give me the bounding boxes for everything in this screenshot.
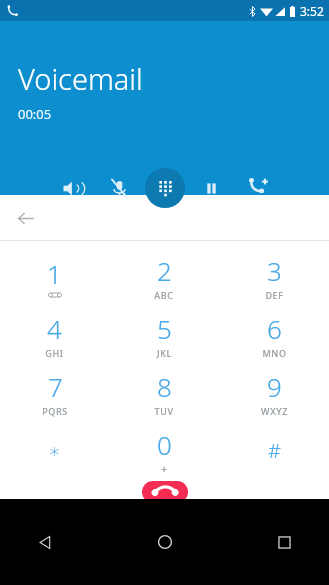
staticText: 3:52 — [300, 3, 324, 19]
button[interactable]: Key 0 — [109, 425, 219, 477]
button[interactable]: Key 7 — [0, 367, 109, 419]
staticText: 1 — [47, 256, 62, 291]
button[interactable]: Key 4 — [0, 309, 109, 361]
staticText: 00:05 — [18, 105, 52, 123]
button[interactable]: Recent apps — [261, 519, 307, 565]
staticText: TUV — [154, 405, 174, 417]
staticText: 4 — [47, 311, 62, 346]
button[interactable]: Dialpad — [145, 168, 185, 208]
staticText: MNO — [262, 347, 287, 359]
button[interactable]: Key 5 — [109, 309, 219, 361]
staticText: GHI — [45, 347, 64, 359]
button[interactable]: Hold — [189, 166, 233, 210]
button[interactable]: Add call — [237, 166, 281, 210]
staticText: 9 — [267, 369, 282, 404]
button[interactable]: Back — [22, 519, 68, 565]
staticText: 0 — [157, 427, 172, 462]
staticText: JKL — [157, 347, 172, 359]
staticText: 2 — [157, 253, 172, 288]
button[interactable]: Key 9 — [219, 367, 329, 419]
button[interactable]: Key 6 — [219, 309, 329, 361]
staticText: ABC — [154, 289, 174, 301]
button[interactable]: Key 1 — [0, 251, 109, 303]
button[interactable]: End call — [142, 481, 188, 503]
staticText: DEF — [265, 289, 284, 301]
button[interactable]: Key 2 — [109, 251, 219, 303]
button[interactable]: Back — [8, 201, 42, 235]
staticText: 7 — [48, 369, 63, 404]
staticText: PQRS — [42, 405, 68, 417]
staticText: 6 — [267, 311, 282, 346]
staticText: 3 — [267, 253, 282, 288]
button[interactable]: Home — [142, 519, 188, 565]
staticText: # — [268, 437, 281, 464]
button[interactable]: Speaker — [49, 166, 93, 210]
staticText: ∗ — [48, 439, 61, 462]
button[interactable]: Mute — [97, 166, 141, 210]
button[interactable]: Key 3 — [219, 251, 329, 303]
button[interactable]: Key # — [219, 425, 329, 477]
staticText: WXYZ — [261, 405, 288, 417]
staticText: + — [161, 462, 168, 476]
button[interactable]: Key 8 — [109, 367, 219, 419]
staticText: 5 — [157, 311, 172, 346]
staticText: Voicemail — [18, 59, 143, 98]
staticText: 8 — [157, 369, 172, 404]
button[interactable]: Key ∗ — [0, 425, 109, 477]
